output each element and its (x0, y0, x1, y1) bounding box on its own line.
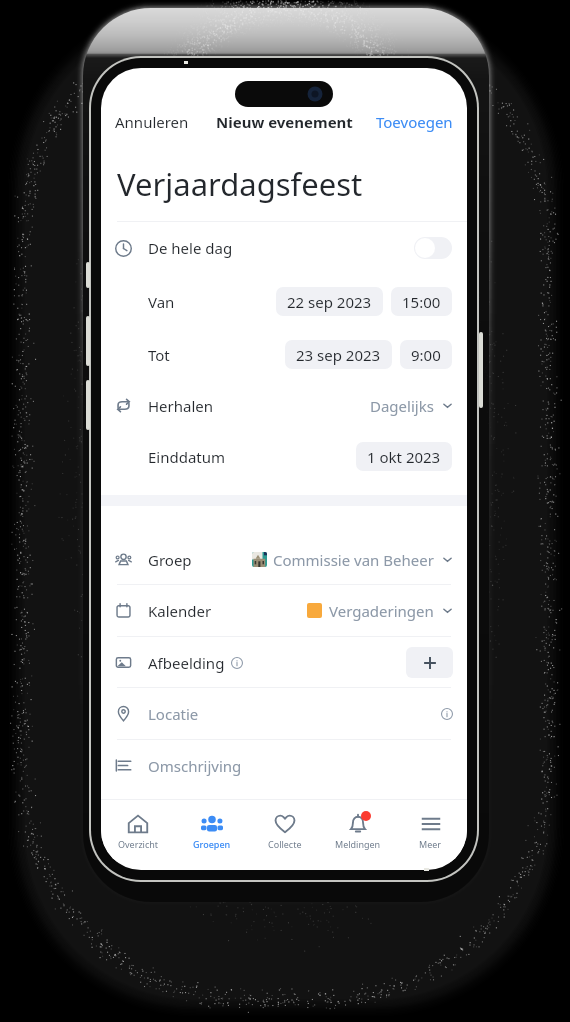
button[interactable]: Van (101, 275, 467, 328)
staticText: Nieuw evenement (216, 112, 353, 132)
staticText: Kalender (148, 601, 212, 621)
staticText: Herhalen (148, 396, 214, 416)
button[interactable]: Collecte (248, 800, 321, 862)
button[interactable]: De hele dag schakelaar (414, 237, 452, 259)
button[interactable]: Annuleren (115, 112, 189, 132)
staticText: Tot (148, 345, 170, 365)
staticText: Groepen (193, 838, 231, 850)
staticText: Einddatum (148, 447, 226, 467)
button[interactable]: Kalender (101, 585, 467, 636)
staticText: Collecte (268, 838, 302, 850)
staticText: Verjaardagsfeest (117, 163, 363, 203)
staticText: Afbeelding (148, 653, 225, 673)
staticText: 15:00 (402, 292, 441, 312)
staticText: Commissie van Beheer (273, 550, 434, 570)
staticText: Vergaderingen (329, 601, 434, 621)
button[interactable]: Herhalen (101, 380, 467, 431)
button[interactable]: Groep (101, 534, 467, 585)
staticText: Van (148, 292, 175, 312)
staticText: 9:00 (411, 345, 441, 365)
button[interactable]: 1 okt 2023 (356, 442, 452, 471)
button[interactable]: Tot (101, 328, 467, 381)
button[interactable]: Groepen (175, 800, 248, 862)
staticText: Overzicht (118, 838, 159, 850)
staticText: De hele dag (148, 238, 233, 258)
button[interactable]: Meer (394, 800, 467, 862)
staticText: Dagelijks (370, 396, 434, 416)
staticText: Meer (419, 838, 442, 850)
button[interactable]: Locatie (101, 688, 467, 739)
button[interactable]: Meldingen (321, 800, 394, 862)
button[interactable]: Overzicht (101, 800, 175, 862)
button[interactable]: Afbeelding toevoegen (406, 647, 453, 678)
staticText: 1 okt 2023 (367, 447, 441, 467)
staticText: Locatie (148, 704, 199, 724)
staticText: Groep (148, 550, 192, 570)
staticText: Omschrijving (148, 756, 242, 776)
button[interactable]: 23 sep 2023 (285, 340, 392, 369)
button[interactable]: De hele dag (101, 221, 467, 275)
staticText: 22 sep 2023 (287, 292, 372, 312)
button[interactable]: 15:00 (391, 287, 452, 316)
button[interactable]: 9:00 (400, 340, 452, 369)
button[interactable]: Einddatum (101, 431, 467, 482)
button[interactable]: Omschrijving (101, 740, 467, 791)
staticText: 23 sep 2023 (296, 345, 381, 365)
button[interactable]: Toevoegen (376, 112, 453, 132)
staticText: Meldingen (335, 838, 381, 850)
button[interactable]: 22 sep 2023 (276, 287, 383, 316)
